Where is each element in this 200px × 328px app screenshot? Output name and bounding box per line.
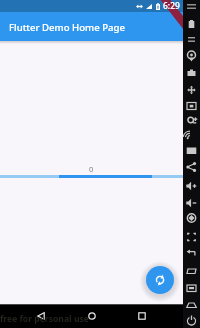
button[interactable]: Emulator controls [183,0,200,328]
staticText: 6:29 [163,0,180,12]
staticText: free for personal use [0,313,89,325]
staticText: 0 [89,164,94,174]
button[interactable]: Refresh [146,266,174,294]
staticText: Flutter Demo Home Page [9,21,125,34]
button[interactable]: Back [33,308,49,324]
button[interactable]: Recents [134,308,150,324]
button[interactable]: Home [84,308,100,324]
